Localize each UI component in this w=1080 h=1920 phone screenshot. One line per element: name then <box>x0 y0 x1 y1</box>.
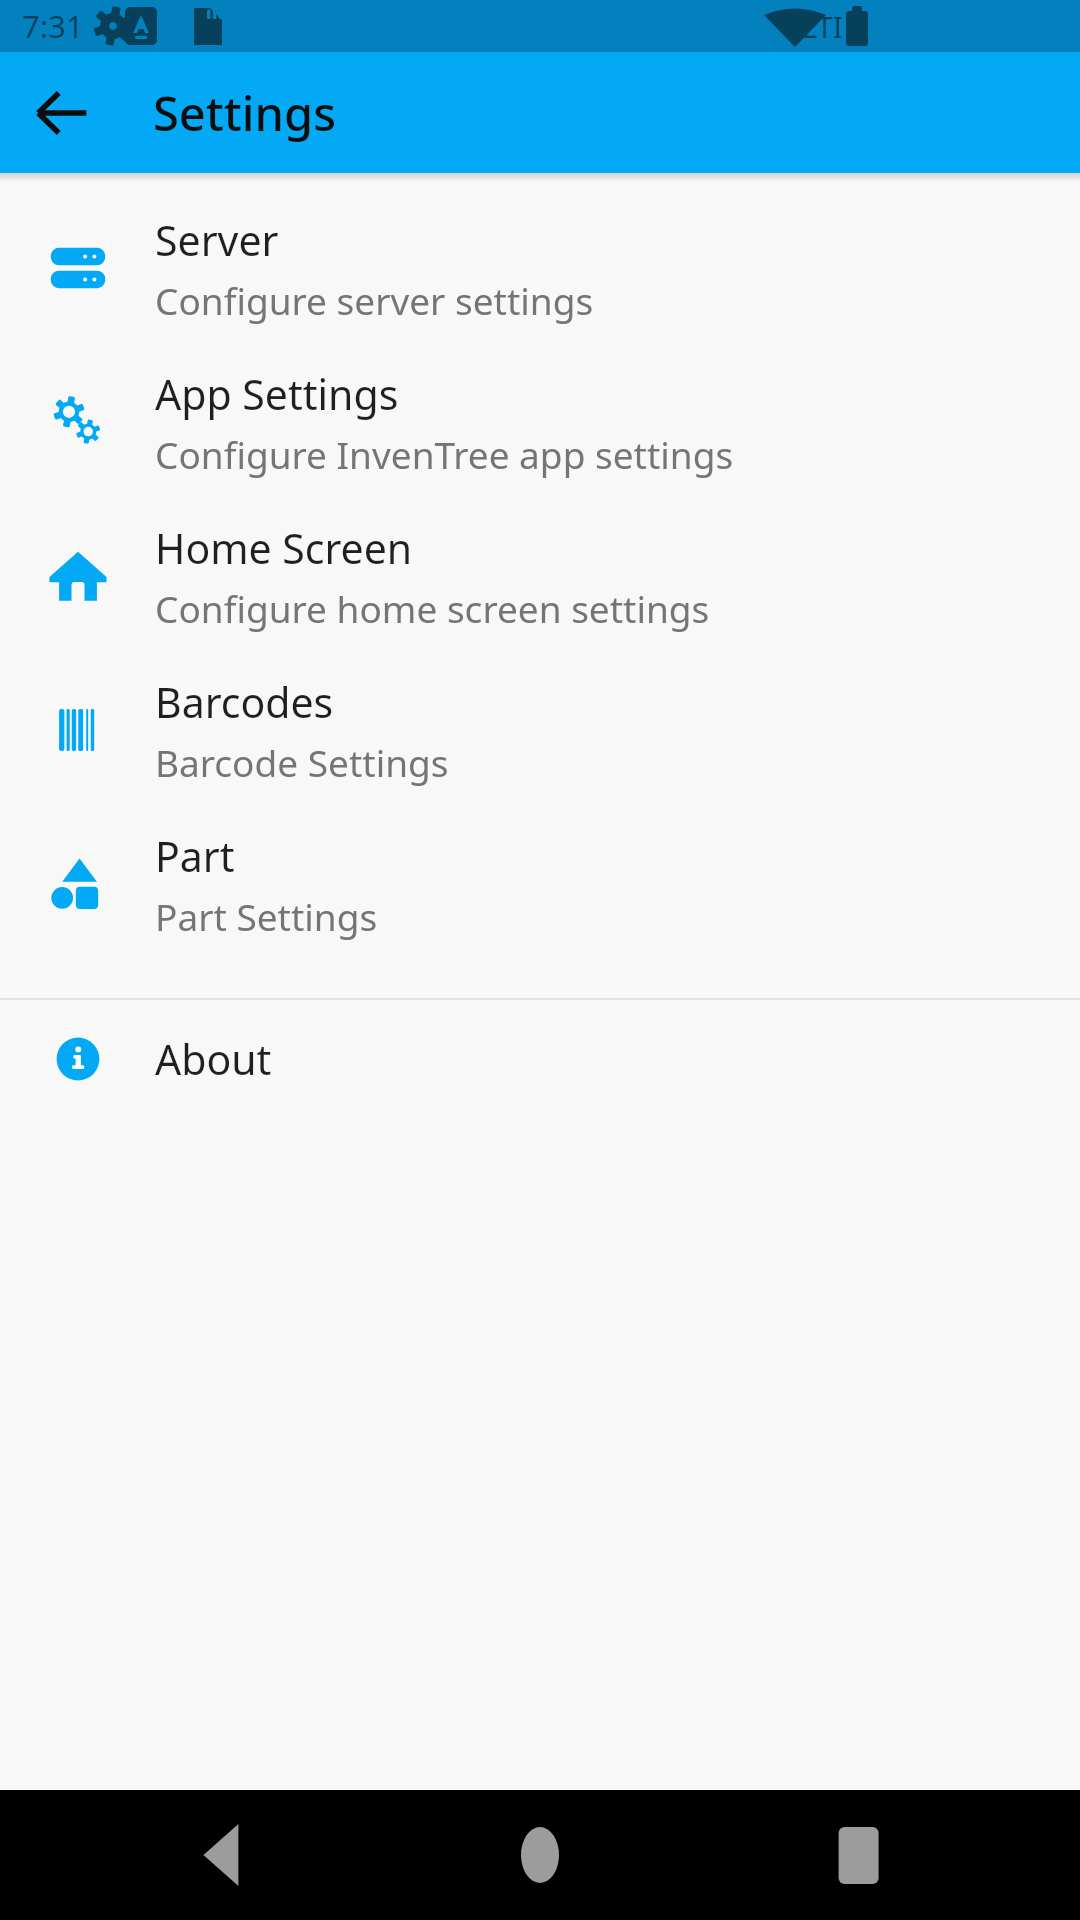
staticText: App Settings <box>155 366 399 422</box>
button[interactable]: Home Screen <box>0 499 1080 653</box>
button[interactable]: App Settings <box>0 345 1080 499</box>
staticText: About <box>155 1031 272 1087</box>
staticText: Barcode Settings <box>155 737 449 787</box>
staticText: 7:31 <box>22 5 84 47</box>
staticText: Configure home screen settings <box>155 583 710 633</box>
staticText: Configure server settings <box>155 275 594 325</box>
staticText: Settings <box>153 81 336 145</box>
staticText: Part <box>155 828 235 884</box>
button[interactable]: Part <box>0 807 1080 961</box>
button[interactable]: About <box>0 1000 1080 1118</box>
staticText: Server <box>155 212 279 268</box>
staticText: Part Settings <box>155 891 378 941</box>
button[interactable]: Back <box>20 71 104 155</box>
button[interactable]: Server <box>0 191 1080 345</box>
staticText: LTI <box>802 7 843 46</box>
staticText: Home Screen <box>155 520 413 576</box>
button[interactable]: Barcodes <box>0 653 1080 807</box>
staticText: Barcodes <box>155 674 334 730</box>
staticText: Configure InvenTree app settings <box>155 429 734 479</box>
